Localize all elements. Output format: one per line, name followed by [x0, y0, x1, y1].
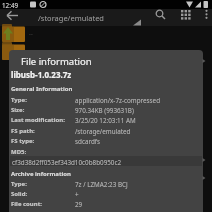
staticText: FS type: — [11, 137, 35, 145]
staticText: FS path: — [11, 127, 35, 135]
staticText: Type: — [11, 96, 27, 104]
staticText: Archive information — [11, 170, 72, 178]
staticText: Size: — [11, 106, 25, 114]
staticText: File information — [21, 55, 92, 68]
staticText: Solid: — [11, 190, 28, 198]
staticText: General Information — [11, 85, 73, 93]
button[interactable] — [175, 9, 195, 26]
staticText: /storage/emulated — [38, 13, 104, 23]
button[interactable] — [150, 9, 170, 26]
staticText: 29 — [75, 200, 83, 209]
staticText: application/x-7z-compressed — [75, 96, 161, 105]
staticText: Type: — [11, 180, 27, 188]
button[interactable] — [0, 26, 212, 46]
staticText: /storage/emulated — [75, 127, 131, 136]
staticText: sdcardfs — [75, 137, 100, 146]
staticText: cf3d38d2ff053ef343d10c0b8b0950c2 — [12, 158, 122, 167]
staticText: MD5: — [11, 148, 27, 156]
staticText: 12:49 — [2, 1, 19, 10]
staticText: File count: — [11, 200, 42, 208]
button[interactable] — [198, 9, 212, 26]
staticText: 970.34KB (993631B) — [75, 106, 134, 115]
staticText: 3/25/20 12:03:11 AM — [75, 116, 136, 125]
button[interactable] — [0, 9, 22, 26]
staticText: .. — [29, 28, 33, 38]
staticText: Last modification: — [11, 116, 65, 124]
staticText: 7z / LZMA2:23 BCJ — [75, 180, 128, 189]
staticText: libusb-1.0.23.7z — [11, 69, 72, 80]
staticText: + — [75, 190, 79, 199]
button[interactable]: File information — [9, 50, 203, 212]
